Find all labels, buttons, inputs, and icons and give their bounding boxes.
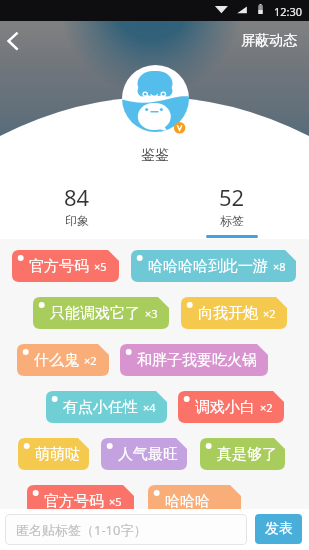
button[interactable]: 什么鬼 bbox=[17, 344, 109, 376]
staticText: 52 bbox=[219, 182, 245, 212]
staticText: 萌萌哒 bbox=[35, 445, 80, 464]
staticText: 官方号码 bbox=[29, 257, 89, 276]
staticText: 屏蔽动态 bbox=[241, 32, 297, 50]
button[interactable]: 发表 bbox=[255, 514, 302, 544]
staticText: 和胖子我要吃火锅 bbox=[137, 351, 257, 370]
staticText: ×5 bbox=[109, 494, 122, 509]
button[interactable]: 只能调戏它了 bbox=[33, 297, 169, 329]
staticText: 哈哈哈 bbox=[165, 492, 210, 511]
staticText: 什么鬼 bbox=[34, 351, 79, 370]
staticText: 标签 bbox=[220, 213, 244, 228]
staticText: ×2 bbox=[263, 306, 276, 321]
staticText: 发表 bbox=[265, 520, 293, 538]
button[interactable]: 屏蔽动态 bbox=[233, 27, 305, 55]
button[interactable]: 和胖子我要吃火锅 bbox=[120, 344, 268, 376]
staticText: 哈哈哈哈到此一游 bbox=[148, 257, 268, 276]
button[interactable]: 哈哈哈 bbox=[148, 485, 241, 517]
staticText: 匿名贴标签（1-10字） bbox=[16, 521, 147, 539]
staticText: 12:30 bbox=[274, 4, 303, 19]
button[interactable]: 官方号码 bbox=[12, 250, 119, 282]
staticText: ×2 bbox=[84, 353, 97, 368]
staticText: ×8 bbox=[273, 259, 286, 274]
button[interactable]: 官方号码 bbox=[27, 485, 134, 517]
button[interactable]: 调戏小白 bbox=[178, 391, 284, 423]
staticText: ×4 bbox=[143, 400, 156, 415]
staticText: ×2 bbox=[260, 400, 273, 415]
staticText: 真是够了 bbox=[217, 445, 277, 464]
button[interactable]: 有点小任性 bbox=[46, 391, 167, 423]
staticText: 调戏小白 bbox=[195, 398, 255, 417]
staticText: 官方号码 bbox=[44, 492, 104, 511]
staticText: 鉴鉴 bbox=[141, 146, 169, 164]
staticText: 84 bbox=[64, 182, 90, 212]
button[interactable]: 匿名贴标签（1-10字） bbox=[5, 514, 247, 545]
button[interactable]: 向我开炮 bbox=[181, 297, 287, 329]
staticText: ×5 bbox=[94, 259, 107, 274]
button[interactable]: 52 bbox=[154, 182, 309, 238]
staticText: 有点小任性 bbox=[63, 398, 138, 417]
staticText: ×3 bbox=[145, 306, 158, 321]
staticText: 印象 bbox=[65, 213, 89, 228]
staticText: 只能调戏它了 bbox=[50, 304, 140, 323]
button[interactable]: Back bbox=[0, 24, 34, 58]
staticText: 人气最旺 bbox=[118, 445, 178, 464]
button[interactable]: 哈哈哈哈到此一游 bbox=[131, 250, 296, 282]
button[interactable]: 真是够了 bbox=[200, 438, 285, 470]
staticText: 向我开炮 bbox=[198, 304, 258, 323]
button[interactable]: 84 bbox=[0, 182, 154, 238]
button[interactable]: 萌萌哒 bbox=[18, 438, 89, 470]
button[interactable]: 人气最旺 bbox=[101, 438, 187, 470]
